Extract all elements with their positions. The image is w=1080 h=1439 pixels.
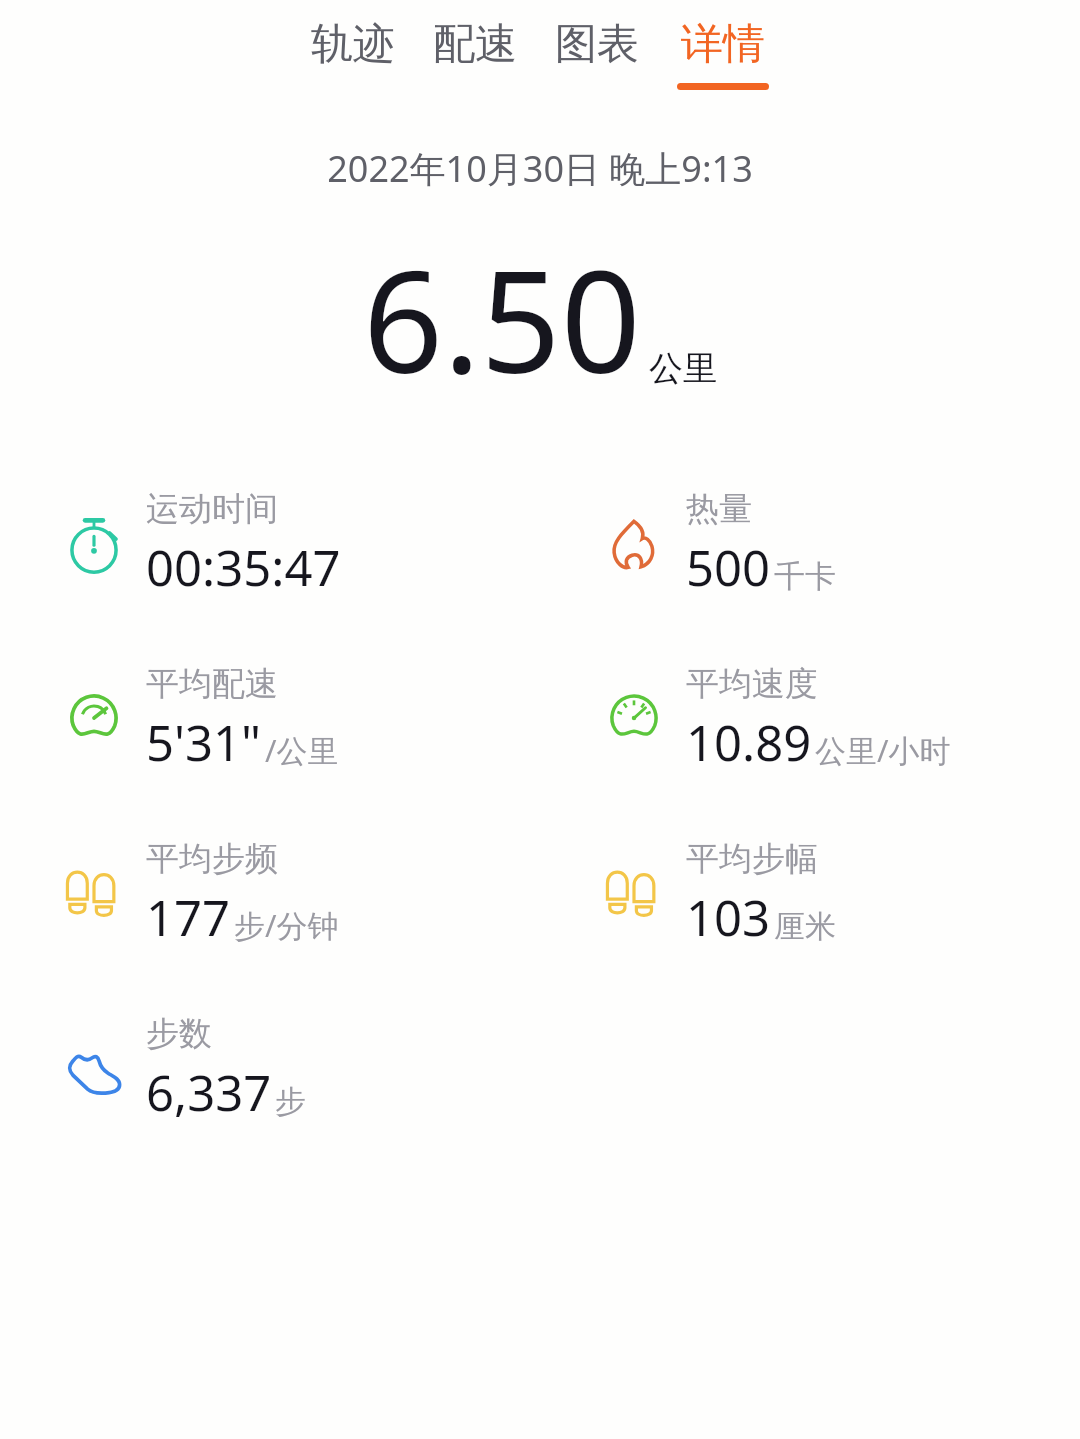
staticText: 公里/小时 — [815, 729, 951, 771]
staticText: 轨迹 — [311, 18, 395, 71]
staticText: 平均步幅 — [686, 838, 818, 880]
staticText: 平均速度 — [686, 663, 818, 705]
button[interactable]: 轨迹 — [305, 14, 401, 94]
button[interactable]: 图表 — [549, 14, 645, 94]
button[interactable]: 平均步幅 — [540, 838, 1080, 951]
other: 步数 — [62, 1038, 126, 1102]
staticText: 图表 — [555, 18, 639, 71]
other: 平均配速 — [62, 688, 126, 752]
staticText: 配速 — [433, 18, 517, 71]
other: 热量 — [602, 513, 666, 577]
staticText: 10.89 — [686, 709, 812, 776]
staticText: 步/分钟 — [234, 904, 339, 946]
button[interactable]: 平均步频 — [0, 838, 540, 951]
staticText: 热量 — [686, 488, 752, 530]
staticText: 步 — [275, 1082, 306, 1121]
other: 平均步幅 — [602, 863, 666, 927]
staticText: 103 — [686, 884, 771, 951]
staticText: 6.50 — [363, 223, 641, 414]
other: 平均步频 — [62, 863, 126, 927]
staticText: 平均步频 — [146, 838, 278, 880]
staticText: 500 — [686, 534, 771, 601]
staticText: 厘米 — [774, 907, 836, 946]
staticText: 步数 — [146, 1013, 212, 1055]
staticText: 公里 — [649, 347, 717, 390]
other: 运动时间 — [62, 513, 126, 577]
button[interactable]: 热量 — [540, 488, 1080, 601]
button[interactable]: 运动时间 — [0, 488, 540, 601]
staticText: /公里 — [265, 729, 339, 771]
staticText: 平均配速 — [146, 663, 278, 705]
staticText: 运动时间 — [146, 488, 278, 530]
button[interactable]: 平均配速 — [0, 663, 540, 776]
staticText: 00:35:47 — [146, 534, 341, 601]
button[interactable]: 详情 — [671, 14, 775, 94]
staticText: 详情 — [681, 18, 765, 71]
other: 平均速度 — [602, 688, 666, 752]
staticText: 千卡 — [774, 557, 836, 596]
button[interactable]: 步数 — [0, 1013, 540, 1126]
staticText: 6,337 — [146, 1059, 272, 1126]
staticText: 5'31" — [146, 709, 262, 776]
staticText: 177 — [146, 884, 231, 951]
button[interactable]: 平均速度 — [540, 663, 1080, 776]
button[interactable]: 配速 — [427, 14, 523, 94]
staticText: 2022年10月30日 晚上9:13 — [0, 144, 1080, 193]
